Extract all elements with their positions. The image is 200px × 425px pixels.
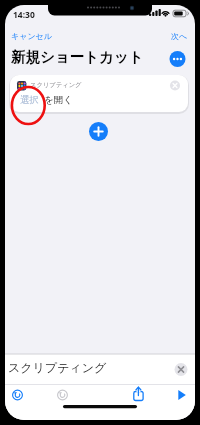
button[interactable] (10, 75, 188, 112)
button[interactable]: 選択 (20, 94, 39, 106)
staticText: スクリプティング (8, 360, 107, 375)
button[interactable] (169, 51, 186, 68)
button[interactable]: キャンセル (11, 31, 52, 41)
button[interactable] (131, 386, 147, 402)
button[interactable] (173, 387, 189, 403)
staticText: を開く (44, 94, 73, 106)
staticText: 14:30 (13, 9, 35, 21)
button[interactable] (174, 363, 188, 377)
staticText: スクリプティング (30, 81, 82, 89)
button[interactable]: 次へ (171, 31, 188, 41)
staticText: 新規ショートカット (11, 48, 144, 66)
button[interactable] (55, 387, 71, 403)
button[interactable] (10, 387, 26, 403)
button[interactable] (89, 122, 108, 141)
